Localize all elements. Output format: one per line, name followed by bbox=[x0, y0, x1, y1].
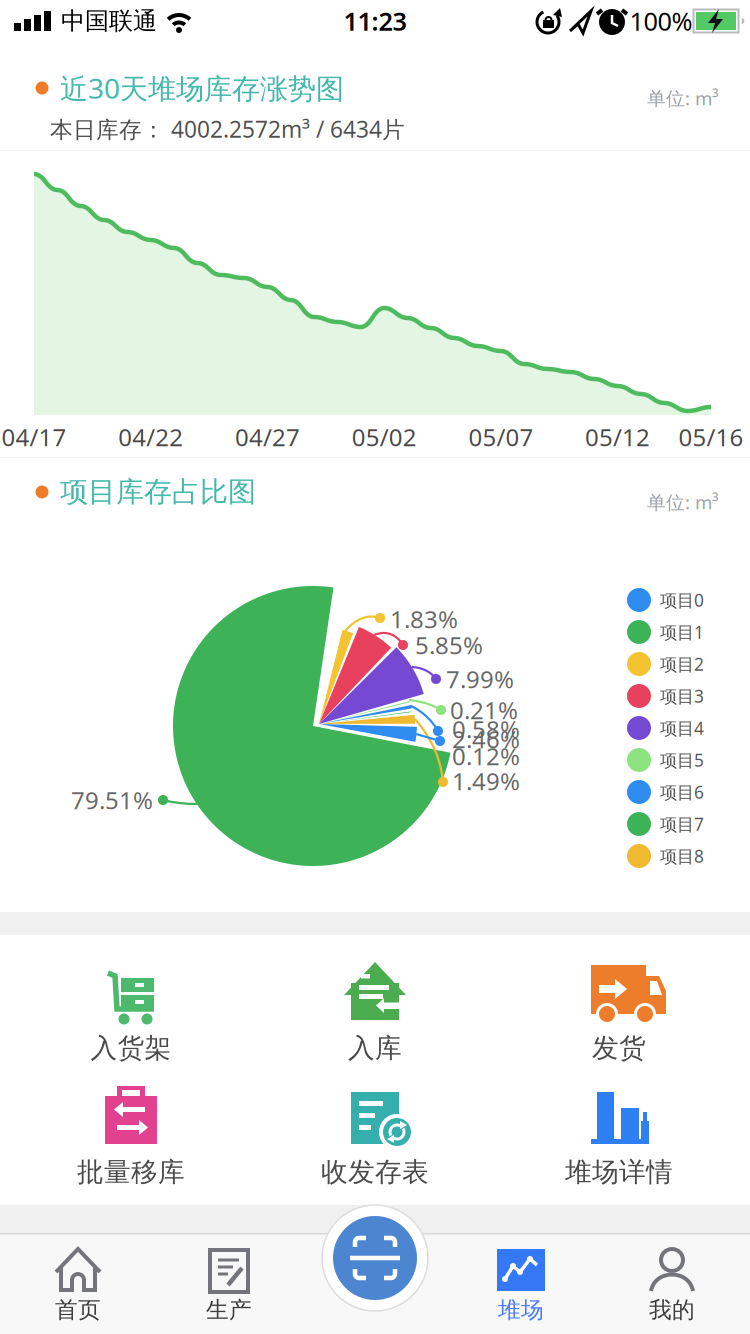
staticText: 项目0 bbox=[660, 588, 704, 611]
button[interactable]: 我的 bbox=[612, 1235, 732, 1334]
staticText: 05/07 bbox=[468, 421, 533, 453]
staticText: 2.46% bbox=[452, 723, 520, 755]
button[interactable]: 生产 bbox=[169, 1235, 289, 1334]
staticText: 中国联通 bbox=[61, 6, 157, 36]
staticText: 单位: m³ bbox=[647, 86, 719, 110]
staticText: 05/02 bbox=[352, 421, 417, 453]
staticText: 0.21% bbox=[450, 694, 518, 726]
staticText: 收发存表 bbox=[321, 1156, 429, 1188]
staticText: 项目6 bbox=[660, 780, 704, 803]
staticText: 项目4 bbox=[660, 716, 704, 739]
staticText: 04/22 bbox=[118, 421, 183, 453]
staticText: 首页 bbox=[55, 1296, 101, 1324]
staticText: 项目3 bbox=[660, 684, 704, 707]
staticText: 生产 bbox=[206, 1296, 252, 1324]
button[interactable]: 堆场 bbox=[461, 1235, 581, 1334]
staticText: 项目1 bbox=[660, 620, 704, 643]
button[interactable]: 收发存表 bbox=[275, 1077, 475, 1207]
staticText: 05/12 bbox=[585, 421, 650, 453]
staticText: 5.85% bbox=[415, 629, 483, 661]
staticText: 79.51% bbox=[71, 784, 153, 816]
staticText: 0.58% bbox=[452, 713, 520, 745]
staticText: 11:23 bbox=[343, 4, 406, 38]
staticText: 04/27 bbox=[235, 421, 300, 453]
staticText: 05/16 bbox=[678, 421, 743, 453]
staticText: 入库 bbox=[348, 1032, 402, 1064]
staticText: 项目2 bbox=[660, 652, 704, 675]
staticText: 堆场详情 bbox=[565, 1156, 673, 1188]
staticText: 入货架 bbox=[90, 1032, 171, 1064]
staticText: 近30天堆场库存涨势图 bbox=[60, 69, 344, 107]
staticText: 堆场 bbox=[498, 1296, 544, 1324]
button[interactable]: 批量移库 bbox=[31, 1077, 231, 1207]
staticText: 7.99% bbox=[446, 663, 514, 695]
staticText: 项目8 bbox=[660, 844, 704, 867]
button[interactable]: 首页 bbox=[18, 1235, 138, 1334]
button[interactable]: 入库 bbox=[275, 953, 475, 1083]
staticText: 项目5 bbox=[660, 748, 704, 771]
staticText: 项目库存占比图 bbox=[60, 475, 256, 509]
staticText: 批量移库 bbox=[77, 1156, 185, 1188]
staticText: 项目7 bbox=[660, 812, 704, 835]
staticText: 本日库存： 4002.2572m³ / 6434片 bbox=[50, 114, 405, 144]
staticText: 我的 bbox=[649, 1296, 695, 1324]
button[interactable]: 堆场详情 bbox=[519, 1077, 719, 1207]
staticText: 1.49% bbox=[452, 765, 520, 797]
button[interactable]: 扫码 bbox=[315, 1198, 435, 1318]
button[interactable]: 入货架 bbox=[31, 953, 231, 1083]
staticText: 单位: m³ bbox=[647, 490, 719, 514]
staticText: 04/17 bbox=[1, 421, 66, 453]
staticText: 发货 bbox=[592, 1032, 646, 1064]
staticText: 100% bbox=[629, 4, 692, 38]
button[interactable]: 发货 bbox=[519, 953, 719, 1083]
staticText: 1.83% bbox=[390, 603, 458, 635]
staticText: 0.12% bbox=[452, 740, 520, 772]
